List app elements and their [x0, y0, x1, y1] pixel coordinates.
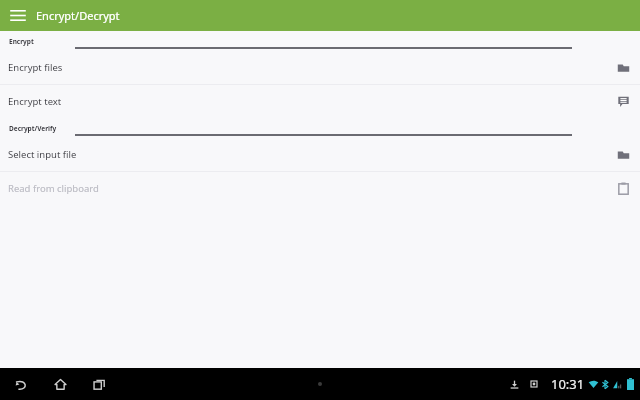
button[interactable]: Select input file [0, 138, 640, 171]
staticText: 10:31 [551, 375, 585, 393]
staticText: Read from clipboard [8, 182, 99, 195]
staticText: Encrypt text [8, 95, 62, 108]
staticText: Select input file [8, 148, 77, 161]
button[interactable]: Recent apps [86, 371, 112, 397]
staticText: Encrypt/Decrypt [36, 8, 120, 23]
button[interactable]: Home [47, 371, 73, 397]
button[interactable]: Encrypt files [0, 51, 640, 84]
staticText: Encrypt files [8, 61, 63, 74]
staticText: Decrypt/Verify [9, 124, 57, 133]
button[interactable]: Back [8, 371, 34, 397]
button[interactable]: Read from clipboard [0, 172, 640, 205]
button[interactable]: Open navigation menu [0, 0, 36, 31]
staticText: Encrypt [9, 37, 34, 46]
button[interactable]: Encrypt text [0, 85, 640, 118]
